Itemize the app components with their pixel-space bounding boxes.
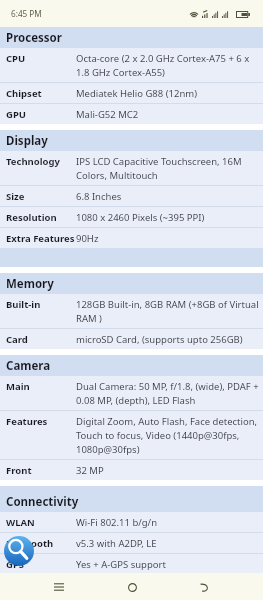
- button[interactable]: Resolution: [0, 207, 263, 228]
- button[interactable]: Technology: [0, 151, 263, 186]
- staticText: 32 MP: [76, 463, 104, 477]
- staticText: Front: [6, 463, 76, 477]
- staticText: Features: [6, 414, 76, 428]
- staticText: Mediatek Helio G88 (12nm): [76, 86, 198, 100]
- staticText: Technology: [6, 154, 76, 168]
- staticText: Processor: [6, 30, 62, 46]
- staticText: Wi-Fi 802.11 b/g/n: [76, 515, 158, 529]
- button[interactable]: Extra Features: [0, 228, 263, 248]
- staticText: Dual Camera: 50 MP, f/1.8, (wide), PDAF …: [76, 379, 262, 407]
- staticText: Connectivity: [6, 494, 79, 510]
- button[interactable]: Chipset: [0, 83, 263, 104]
- button[interactable]: Features: [0, 411, 263, 460]
- button[interactable]: Display: [0, 130, 263, 151]
- staticText: Card: [6, 332, 76, 346]
- staticText: Size: [6, 189, 76, 203]
- staticText: Yes + A-GPS support: [76, 557, 166, 571]
- button[interactable]: Size: [0, 186, 263, 207]
- staticText: Digital Zoom, Auto Flash, Face detection…: [76, 414, 262, 456]
- button[interactable]: Processor: [0, 27, 263, 48]
- staticText: microSD Card, (supports upto 256GB): [76, 332, 243, 346]
- button[interactable]: Search: [4, 536, 34, 566]
- staticText: Mali-G52 MC2: [76, 107, 139, 121]
- staticText: Display: [6, 133, 48, 149]
- staticText: 6.8 Inches: [76, 189, 122, 203]
- staticText: Bluetooth: [6, 536, 76, 550]
- staticText: Octa-core (2 x 2.0 GHz Cortex-A75 + 6 x …: [76, 51, 262, 79]
- button[interactable]: Connectivity: [0, 486, 263, 512]
- button[interactable]: Recents: [46, 574, 72, 600]
- button[interactable]: Back: [191, 574, 217, 600]
- staticText: Camera: [6, 358, 51, 374]
- staticText: Chipset: [6, 86, 76, 100]
- staticText: GPU: [6, 107, 76, 121]
- staticText: Main: [6, 379, 76, 393]
- staticText: Built-in: [6, 297, 76, 311]
- button[interactable]: Card: [0, 329, 263, 349]
- staticText: Memory: [6, 276, 54, 292]
- staticText: GPS: [6, 557, 76, 571]
- staticText: IPS LCD Capacitive Touchscreen, 16M Colo…: [76, 154, 262, 182]
- staticText: Resolution: [6, 210, 76, 224]
- button[interactable]: Camera: [0, 355, 263, 376]
- button[interactable]: Built-in: [0, 294, 263, 329]
- button[interactable]: Memory: [0, 273, 263, 294]
- button[interactable]: Bluetooth: [0, 533, 263, 554]
- button[interactable]: GPS: [0, 554, 263, 574]
- staticText: 90Hz: [76, 231, 99, 245]
- staticText: Extra Features: [6, 231, 76, 245]
- staticText: CPU: [6, 51, 76, 65]
- staticText: 1080 x 2460 Pixels (~395 PPI): [76, 210, 205, 224]
- staticText: WLAN: [6, 515, 76, 529]
- button[interactable]: WLAN: [0, 512, 263, 533]
- button[interactable]: Main: [0, 376, 263, 411]
- staticText: 6:45 PM: [11, 8, 42, 19]
- staticText: 128GB Built-in, 8GB RAM (+8GB of Virtual…: [76, 297, 262, 325]
- button[interactable]: Front: [0, 460, 263, 480]
- button[interactable]: CPU: [0, 48, 263, 83]
- button[interactable]: GPU: [0, 104, 263, 124]
- staticText: v5.3 with A2DP, LE: [76, 536, 157, 550]
- button[interactable]: Home: [119, 574, 145, 600]
